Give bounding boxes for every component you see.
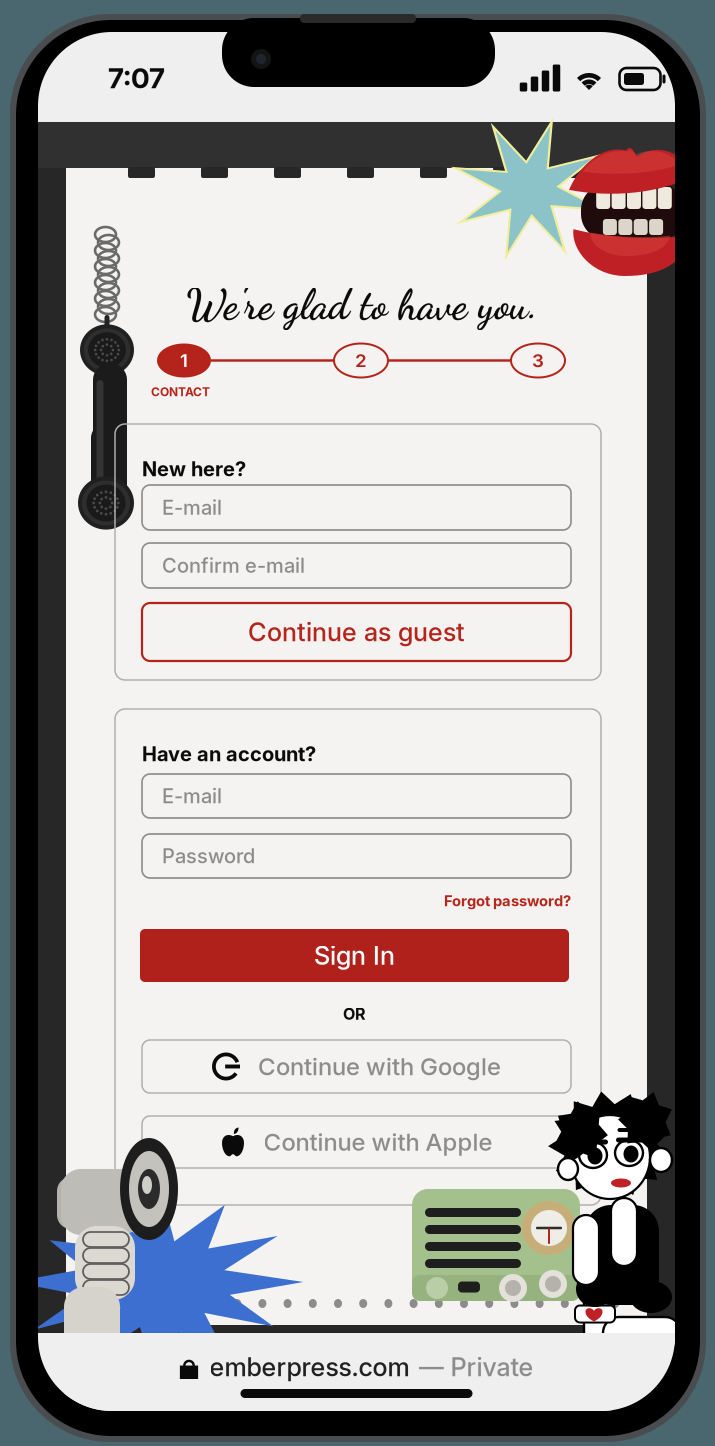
staticText: 7:07 (108, 61, 165, 95)
button[interactable]: Password (142, 834, 571, 878)
staticText: 3 (532, 349, 544, 372)
staticText: Confirm e-mail (162, 553, 305, 578)
staticText: 1 (180, 349, 188, 372)
staticText: Have an account? (142, 742, 316, 766)
staticText: OR (343, 1004, 366, 1024)
staticText: — Private (418, 1352, 533, 1382)
button[interactable]: Continue with Google (142, 1040, 571, 1093)
button[interactable]: Confirm e-mail (142, 543, 571, 588)
staticText: Continue as guest (248, 617, 465, 647)
staticText: Forgot password? (444, 892, 571, 910)
button[interactable]: E-mail (142, 485, 571, 530)
staticText: Continue with Apple (263, 1127, 492, 1156)
button[interactable]: E-mail (142, 774, 571, 818)
button[interactable]: Forgot password? (444, 892, 571, 910)
button[interactable]: Sign In (140, 929, 569, 982)
button[interactable]: Continue as guest (142, 603, 571, 661)
staticText: Sign In (314, 940, 395, 971)
staticText: CONTACT (151, 385, 210, 399)
staticText: emberpress.com (209, 1352, 409, 1382)
staticText: Continue with Google (258, 1052, 501, 1081)
staticText: E-mail (162, 495, 222, 520)
staticText: Password (162, 844, 255, 868)
staticText: We're glad to have you. (186, 280, 538, 330)
button[interactable]: emberpress.com (179, 1352, 533, 1382)
staticText: 2 (355, 349, 367, 372)
button[interactable]: Continue with Apple (142, 1116, 571, 1168)
staticText: E-mail (162, 784, 222, 808)
staticText: New here? (142, 457, 246, 481)
